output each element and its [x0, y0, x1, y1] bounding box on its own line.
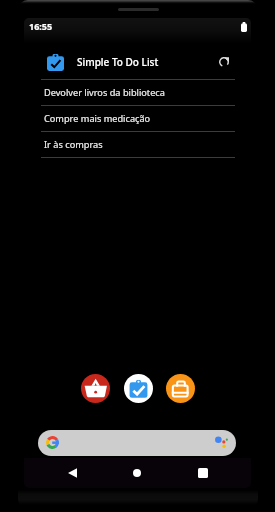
staticText: Simple To Do List [77, 55, 159, 69]
staticText: Compre mais medicação [44, 112, 151, 125]
button[interactable]: Refresh [216, 54, 232, 70]
button[interactable]: Search [38, 430, 236, 456]
button[interactable]: Compre mais medicação [41, 105, 235, 131]
button[interactable]: Devolver livros da biblioteca [41, 79, 235, 105]
button[interactable]: Recent apps [189, 459, 217, 487]
staticText: 16:55 [29, 20, 53, 32]
staticText: Devolver livros da biblioteca [44, 86, 165, 99]
button[interactable]: Simple To Do List [124, 374, 153, 403]
button[interactable]: Back [58, 459, 86, 487]
button[interactable]: Shopping list [81, 374, 110, 403]
button[interactable]: Toolbox [166, 374, 195, 403]
staticText: Ir às compras [44, 138, 103, 151]
button[interactable]: Home [123, 459, 151, 487]
button[interactable]: Ir às compras [41, 131, 235, 157]
